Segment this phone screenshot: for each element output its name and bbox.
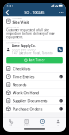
staticText: WORK DESCRIPTION: [6, 26, 19, 28]
staticText: 3: [60, 99, 62, 102]
button[interactable]: Checklists: [3, 65, 66, 73]
staticText: Time Entries: [13, 74, 35, 79]
staticText: Me: [57, 124, 59, 126]
button[interactable]: Calls: [3, 118, 19, 127]
button[interactable]: Start Timer: [3, 56, 66, 65]
staticText: Records: [13, 82, 27, 87]
button[interactable]: Records: [3, 81, 66, 89]
button[interactable]: Time Entries: [3, 73, 66, 81]
button[interactable]: Me: [50, 118, 66, 127]
button[interactable]: Supplier Documents: [3, 97, 66, 105]
staticText: Start Timer: [29, 58, 45, 62]
button[interactable]: Orders: [19, 118, 35, 127]
staticText: 147 Lakeshore Road, Toronto: [12, 51, 53, 55]
staticText: Acme Supply Co.: [12, 44, 36, 48]
staticText: Checklists: [13, 66, 31, 71]
button[interactable]: Work On Hand: [3, 89, 66, 97]
button[interactable]: More options: [57, 8, 66, 16]
button[interactable]: Purchase Orders: [3, 105, 66, 113]
staticText: 2: [60, 75, 62, 78]
button[interactable]: Time: [34, 118, 50, 127]
staticText: 9:41: [6, 4, 13, 7]
staticText: 1: [60, 107, 62, 111]
button[interactable]: Back: [3, 8, 12, 16]
button[interactable]: Call customer: [58, 47, 63, 52]
staticText: SALES ORDER: [12, 18, 22, 19]
staticText: Time: [41, 124, 44, 126]
staticText: CUSTOMER DETAILS: [6, 42, 20, 44]
staticText: Supplier Documents: [13, 98, 48, 103]
staticText: (555) 867-5309: [12, 48, 36, 51]
staticText: Purchase Orders: [13, 106, 43, 111]
staticText: Work On Hand: [13, 90, 39, 95]
staticText: Calls: [9, 124, 12, 126]
staticText: SO - 100245: [24, 10, 44, 15]
staticText: Customer requested a full site inspectio…: [6, 28, 54, 39]
staticText: Orders: [24, 124, 30, 126]
staticText: Site Visit: [12, 19, 29, 25]
